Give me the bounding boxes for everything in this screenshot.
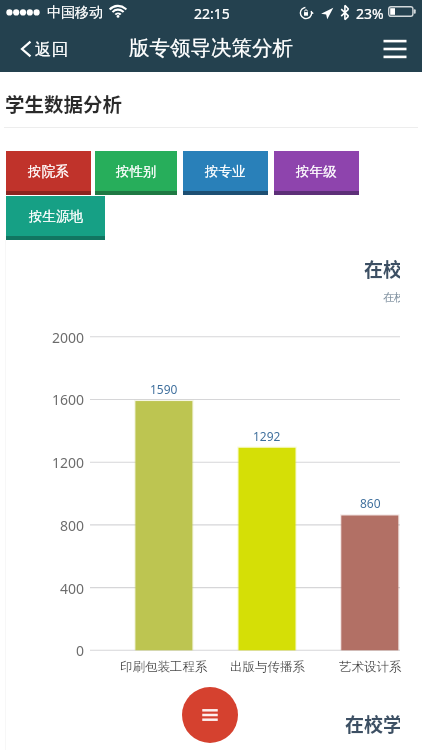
staticText: 中国移动: [47, 4, 103, 22]
staticText: 在校学生人数统计: [383, 290, 400, 304]
staticText: 23%: [356, 4, 384, 23]
staticText: 400: [59, 579, 84, 598]
staticText: 学生数据分析: [5, 89, 123, 117]
staticText: 按专业: [205, 163, 246, 180]
staticText: 按年级: [296, 163, 337, 180]
button[interactable]: Menu: [182, 687, 238, 743]
button[interactable]: 按年级: [274, 151, 359, 195]
staticText: 0: [75, 641, 84, 660]
staticText: 版专领导决策分析: [129, 35, 293, 61]
button[interactable]: 按性别: [95, 151, 177, 195]
button[interactable]: 按生源地: [6, 196, 105, 240]
staticText: 1590: [150, 381, 178, 397]
staticText: 按性别: [116, 163, 157, 180]
staticText: 出版与传播系: [230, 659, 305, 675]
staticText: 印刷包装工程系: [120, 659, 208, 675]
button[interactable]: Menu: [378, 32, 412, 66]
staticText: 860: [360, 495, 381, 511]
staticText: 返回: [35, 39, 68, 60]
staticText: 800: [59, 516, 84, 535]
staticText: 1600: [51, 390, 84, 409]
staticText: 在校学生人数统计: [364, 255, 400, 283]
button[interactable]: 返回: [21, 29, 68, 69]
staticText: 1200: [51, 453, 84, 472]
staticText: 22:15: [194, 4, 230, 23]
button[interactable]: 按专业: [183, 151, 268, 195]
staticText: 艺术设计系: [339, 659, 402, 675]
button[interactable]: 按院系: [6, 151, 91, 195]
staticText: 按生源地: [29, 208, 83, 225]
staticText: 2000: [51, 328, 84, 347]
staticText: 1292: [253, 428, 281, 444]
staticText: 在校学生人数统计: [345, 710, 400, 738]
staticText: 按院系: [28, 163, 69, 180]
